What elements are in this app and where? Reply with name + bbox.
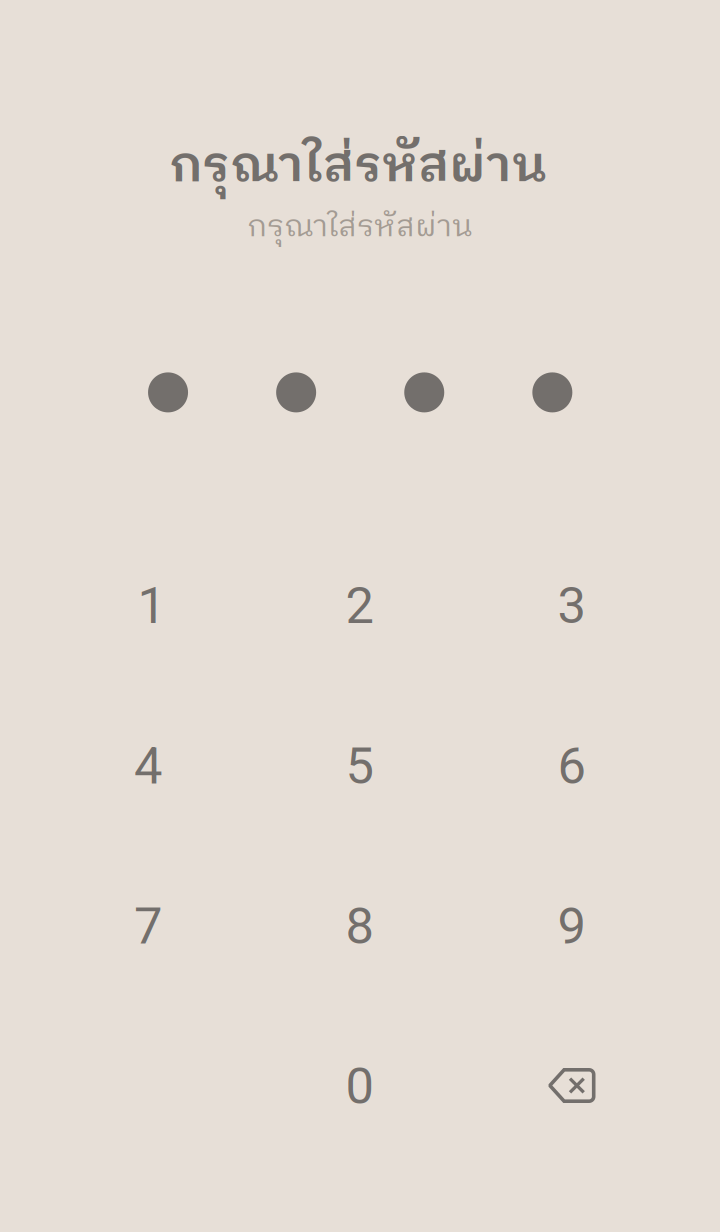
button[interactable]: Delete — [477, 1009, 667, 1161]
button[interactable]: 2 — [265, 530, 455, 682]
staticText: 3 — [558, 576, 586, 635]
button[interactable]: 1 — [56, 530, 246, 682]
button[interactable]: 0 — [265, 1010, 455, 1162]
staticText: กรุณาใส่รหัสผ่าน — [169, 126, 547, 207]
button[interactable]: 8 — [265, 850, 455, 1002]
staticText: 5 — [346, 736, 374, 796]
button[interactable]: 9 — [477, 850, 667, 1002]
button[interactable]: 4 — [53, 690, 243, 842]
button[interactable]: 3 — [477, 530, 667, 682]
staticText: 7 — [134, 896, 162, 956]
button[interactable]: 7 — [53, 850, 243, 1002]
staticText: 4 — [134, 736, 162, 796]
staticText: 6 — [558, 736, 586, 796]
staticText: 2 — [346, 576, 374, 635]
button[interactable]: 5 — [265, 690, 455, 842]
button[interactable]: 6 — [477, 690, 667, 842]
staticText: 8 — [346, 896, 374, 956]
staticText: กรุณาใส่รหัสผ่าน — [247, 202, 473, 252]
staticText: 0 — [346, 1056, 374, 1116]
staticText: 9 — [558, 896, 586, 956]
staticText: 1 — [137, 576, 165, 635]
